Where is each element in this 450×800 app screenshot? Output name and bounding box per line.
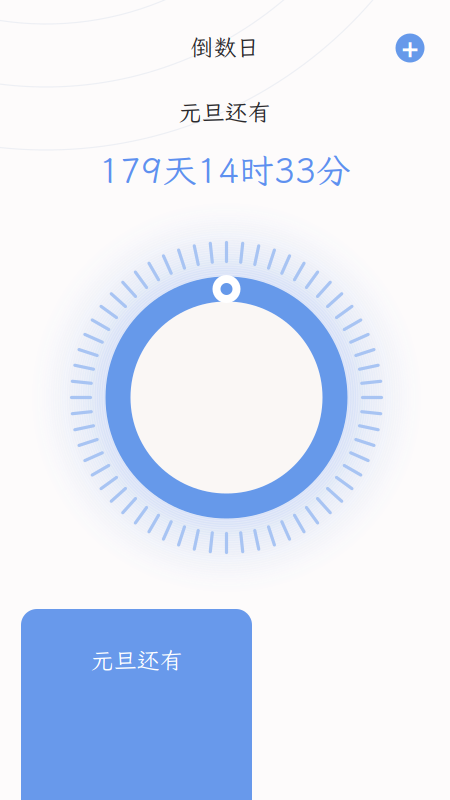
staticText: 元旦还有: [91, 645, 183, 675]
button[interactable]: Add countdown: [387, 25, 433, 71]
button[interactable]: 元旦还有: [21, 609, 252, 800]
staticText: +: [400, 29, 420, 66]
staticText: 元旦还有: [179, 97, 271, 127]
staticText: 倒数日: [190, 32, 259, 62]
staticText: 179天14时33分: [99, 147, 351, 193]
